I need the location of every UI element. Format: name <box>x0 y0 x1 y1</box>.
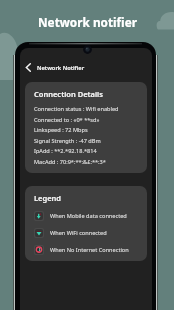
staticText: IpAdd : **2.*92.18.*814 <box>34 147 97 155</box>
button[interactable]: Legend <box>25 186 147 261</box>
staticText: When WiFi connected <box>50 229 107 237</box>
button[interactable]: When Mobile data connected <box>34 210 139 221</box>
button[interactable]: When No Internet Connection <box>34 244 139 255</box>
staticText: MacAdd : 70:9*:**:&£:**:3* <box>34 158 106 166</box>
staticText: Connection Details <box>34 89 103 99</box>
staticText: Network notifier <box>38 14 137 30</box>
staticText: Connection status : Wifi enabled <box>34 105 119 113</box>
button[interactable]: When WiFi connected <box>34 227 139 238</box>
button[interactable]: Back <box>20 57 152 78</box>
staticText: When No Internet Connection <box>50 246 129 254</box>
staticText: Signal Strength : -47 dBm <box>34 137 101 145</box>
staticText: When Mobile data connected <box>50 212 127 220</box>
staticText: Legend <box>34 193 62 203</box>
button[interactable]: Back <box>20 59 37 76</box>
staticText: Network Notifier <box>37 64 85 72</box>
button[interactable]: Connection Details <box>25 82 147 173</box>
staticText: Connected to : «0* **sd» <box>34 116 100 124</box>
staticText: Linkspeed : 72 Mbps <box>34 126 88 134</box>
